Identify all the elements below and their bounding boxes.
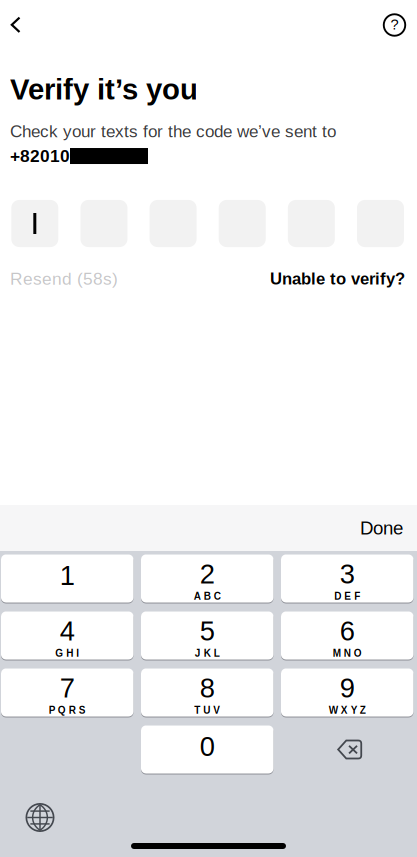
button[interactable]: 8 — [141, 668, 273, 716]
button[interactable]: 0 — [141, 725, 273, 773]
button[interactable]: Delete — [281, 725, 413, 773]
staticText: 1 — [60, 560, 75, 591]
button[interactable]: 2 — [141, 554, 273, 602]
staticText: T U V — [194, 705, 220, 716]
staticText: M N O — [333, 648, 362, 659]
staticText: 6 — [340, 616, 355, 646]
button[interactable]: Back — [0, 0, 31, 50]
button[interactable]: 4 — [1, 611, 133, 659]
staticText: ? — [390, 16, 398, 33]
staticText: Check your texts for the code we’ve sent… — [10, 122, 336, 141]
staticText: G H I — [55, 648, 79, 659]
staticText: 9 — [340, 673, 355, 703]
button[interactable]: 3 — [281, 554, 413, 602]
staticText: 4 — [60, 616, 75, 646]
staticText: +82010 — [10, 146, 70, 166]
button[interactable]: 9 — [281, 668, 413, 716]
button[interactable]: Next keyboard — [15, 791, 65, 843]
button[interactable]: Resend (58s) — [10, 269, 118, 288]
staticText: P Q R S — [49, 705, 86, 716]
button[interactable]: 6 — [281, 611, 413, 659]
staticText: 3 — [340, 559, 355, 589]
button[interactable]: Done — [360, 505, 417, 551]
staticText: 0 — [200, 731, 215, 762]
staticText: W X Y Z — [329, 705, 366, 716]
staticText: Resend (58s) — [10, 269, 118, 288]
staticText: 5 — [200, 616, 215, 646]
button[interactable]: Help — [372, 0, 417, 50]
staticText: 7 — [60, 673, 75, 703]
staticText: 8 — [200, 673, 215, 703]
button[interactable]: Unable to verify? — [270, 269, 405, 288]
staticText: 2 — [200, 559, 215, 589]
staticText: Unable to verify? — [270, 269, 405, 288]
staticText: A B C — [194, 591, 221, 602]
button[interactable]: 5 — [141, 611, 273, 659]
staticText: D E F — [334, 591, 360, 602]
staticText: Done — [360, 518, 403, 538]
staticText: J K L — [195, 648, 220, 659]
button[interactable]: 1 — [1, 554, 133, 602]
staticText: Verify it’s you — [10, 73, 198, 106]
button[interactable]: 7 — [1, 668, 133, 716]
